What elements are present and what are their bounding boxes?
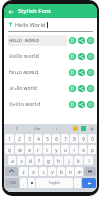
staticText: ℌ℮ℓℓo worℓd xyxy=(9,101,40,108)
button[interactable]: s xyxy=(17,156,25,165)
button[interactable]: h xyxy=(54,156,63,165)
button[interactable]: m xyxy=(75,167,83,176)
button[interactable]: 3 xyxy=(25,134,33,143)
button[interactable]: ℌ℮ℓℓo worℓd xyxy=(4,96,97,112)
staticText: g xyxy=(47,158,50,164)
button[interactable]: ʜᴇʟʟᴏ ᴡᴏʀʟᴅ xyxy=(4,32,97,48)
staticText: 7 xyxy=(64,136,67,142)
button[interactable]: c xyxy=(39,167,47,176)
button[interactable]: Send xyxy=(87,53,94,60)
button[interactable]: . xyxy=(74,178,81,188)
staticText: l xyxy=(88,158,90,164)
button[interactable]: ℍ𝕖𝕝𝕝𝕠 𝕨𝕠𝕣𝕝𝕕 xyxy=(4,48,97,64)
button[interactable]: Send xyxy=(87,37,94,44)
button[interactable]: 6 xyxy=(52,134,60,143)
button[interactable]: Backspace xyxy=(84,167,96,176)
staticText: r xyxy=(37,147,39,153)
button[interactable]: k xyxy=(74,156,83,165)
staticText: f xyxy=(38,158,40,164)
button[interactable]: Copy xyxy=(69,69,76,76)
button[interactable]: f xyxy=(35,156,43,165)
button[interactable]: Settings xyxy=(89,126,94,131)
button[interactable]: d xyxy=(26,156,34,165)
button[interactable]: b xyxy=(57,167,65,176)
staticText: ʜᴇʟʟᴏ ᴡᴏʀʟᴅ xyxy=(9,37,40,44)
button[interactable]: 2 xyxy=(15,134,24,143)
staticText: 2 xyxy=(18,136,21,142)
staticText: m xyxy=(77,169,82,175)
button[interactable]: the xyxy=(27,124,47,133)
staticText: y xyxy=(55,147,58,153)
button[interactable]: w xyxy=(15,145,24,154)
button[interactable]: o xyxy=(79,145,87,154)
button[interactable]: Back xyxy=(6,7,15,16)
staticText: x xyxy=(32,169,35,175)
button[interactable]: Copy xyxy=(69,85,76,92)
button[interactable]: I xyxy=(7,124,27,133)
button[interactable]: g xyxy=(44,156,53,165)
staticText: 0 xyxy=(91,136,94,142)
button[interactable]: u xyxy=(61,145,69,154)
button[interactable]: y xyxy=(52,145,60,154)
button[interactable]: Enter xyxy=(82,178,96,188)
button[interactable]: i xyxy=(47,124,67,133)
staticText: ?123 xyxy=(9,181,16,185)
staticText: I xyxy=(16,126,18,131)
staticText: q xyxy=(8,147,11,153)
button[interactable]: t xyxy=(43,145,51,154)
button[interactable]: English xyxy=(36,178,73,188)
button[interactable]: 8 xyxy=(70,134,78,143)
button[interactable]: 0 xyxy=(88,134,96,143)
button[interactable]: 7 xyxy=(61,134,69,143)
button[interactable]: Share xyxy=(78,69,85,76)
staticText: Stylish Font xyxy=(18,7,52,15)
button[interactable]: Send xyxy=(87,69,94,76)
staticText: z xyxy=(22,169,25,175)
button[interactable]: Share xyxy=(78,53,85,60)
button[interactable]: Emoji xyxy=(73,126,78,131)
button[interactable]: i xyxy=(70,145,78,154)
button[interactable]: ℋℯllo world xyxy=(4,80,97,96)
staticText: n xyxy=(69,169,72,175)
staticText: b xyxy=(60,169,63,175)
staticText: , xyxy=(23,181,25,186)
button[interactable]: p xyxy=(88,145,96,154)
staticText: w xyxy=(18,147,22,153)
button[interactable]: , xyxy=(20,178,27,188)
button[interactable]: Shift xyxy=(5,167,18,176)
button[interactable]: a xyxy=(8,156,16,165)
button[interactable]: l xyxy=(84,156,93,165)
button[interactable]: Copy xyxy=(69,37,76,44)
button[interactable]: ɦɛʟʟo ʍoʀʟɖ xyxy=(4,64,97,80)
button[interactable]: Share xyxy=(78,37,85,44)
button[interactable]: j xyxy=(64,156,73,165)
button[interactable]: n xyxy=(66,167,74,176)
staticText: i xyxy=(73,147,75,153)
button[interactable]: 5 xyxy=(43,134,51,143)
button[interactable]: Copy xyxy=(69,101,76,108)
button[interactable]: Stickers xyxy=(81,126,86,131)
button[interactable]: Hello World xyxy=(8,18,93,31)
staticText: English xyxy=(49,181,60,185)
staticText: 4 xyxy=(37,136,40,142)
button[interactable]: r xyxy=(34,145,42,154)
button[interactable]: Send xyxy=(87,85,94,92)
staticText: 9 xyxy=(82,136,85,142)
button[interactable]: Share xyxy=(78,101,85,108)
button[interactable]: e xyxy=(25,145,33,154)
button[interactable]: z xyxy=(19,167,28,176)
staticText: k xyxy=(77,158,80,164)
button[interactable]: 1 xyxy=(5,134,14,143)
button[interactable]: Voice input xyxy=(28,178,35,188)
button[interactable]: Send xyxy=(87,101,94,108)
button[interactable]: Share xyxy=(78,85,85,92)
button[interactable]: v xyxy=(48,167,56,176)
button[interactable]: 9 xyxy=(79,134,87,143)
button[interactable]: Copy xyxy=(69,53,76,60)
button[interactable]: ?123 xyxy=(5,178,19,188)
button[interactable]: 4 xyxy=(34,134,42,143)
button[interactable]: q xyxy=(5,145,14,154)
button[interactable]: x xyxy=(29,167,38,176)
staticText: t xyxy=(46,147,48,153)
staticText: u xyxy=(64,147,67,153)
